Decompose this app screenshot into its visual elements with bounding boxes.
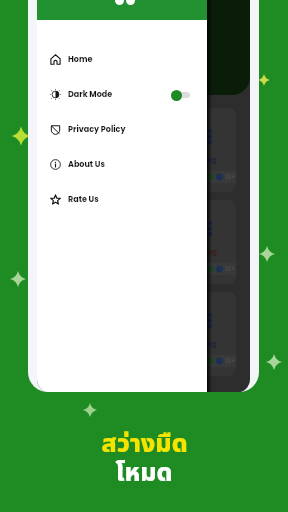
staticText: 18+ (225, 265, 235, 273)
staticText: สว่างมืด (101, 425, 188, 463)
staticText: Privacy Policy (68, 124, 126, 135)
button[interactable]: Dark Mode (37, 77, 207, 112)
staticText: 18+ (225, 357, 235, 365)
staticText: Home (68, 54, 93, 65)
staticText: About Us (68, 159, 105, 170)
staticText: Dark Mode (68, 89, 113, 100)
staticText: Rate Us (68, 194, 99, 205)
staticText: PS (206, 247, 218, 260)
button[interactable]: Privacy Policy (37, 112, 207, 147)
staticText: โหมด (115, 454, 173, 492)
button[interactable]: About Us (37, 147, 207, 182)
staticText: PS (206, 155, 218, 168)
staticText: 18+ (225, 173, 235, 181)
button[interactable]: Dark mode toggle (171, 88, 189, 102)
staticText: PS (206, 339, 218, 352)
button[interactable]: Home (37, 42, 207, 77)
button[interactable]: Rate Us (37, 182, 207, 217)
